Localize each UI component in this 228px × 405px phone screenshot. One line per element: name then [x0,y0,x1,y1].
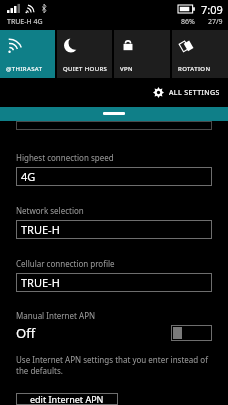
button[interactable]: ALL SETTINGS [153,87,220,98]
button[interactable]: 4G [16,167,212,186]
button[interactable]: edit Internet APN [16,393,118,405]
staticText: TRUE-H 4G [7,17,43,27]
button[interactable]: TRUE-H [16,220,212,239]
staticText: Highest connection speed [16,152,114,163]
staticText: @THIRASAT [6,65,43,73]
staticText: Cellular connection profile [16,258,115,269]
button[interactable]: @THIRASAT [0,30,55,78]
staticText: 86% [181,17,195,27]
staticText: Network selection [16,205,84,216]
staticText: edit Internet APN [30,393,104,405]
staticText: Off [16,324,36,342]
staticText: ALL SETTINGS [169,88,220,98]
staticText: Manual Internet APN [16,310,96,321]
staticText: TRUE-H [21,222,60,237]
staticText: ROTATION LOCK [178,65,228,73]
button[interactable]: TRUE-H [16,273,212,292]
staticText: 27/9 [208,17,223,27]
button[interactable]: Off [0,322,228,343]
button[interactable]: VPN [114,30,170,78]
staticText: 4G [21,169,36,184]
staticText: QUIET HOURS [63,65,108,73]
button[interactable]: ROTATION LOCK [172,30,228,78]
button[interactable] [16,121,212,130]
button[interactable]: Close action center [0,107,228,121]
staticText: TRUE-H [21,275,60,290]
staticText: Use Internet APN settings that you enter… [16,354,210,376]
button[interactable]: QUIET HOURS [57,30,112,78]
staticText: VPN [120,65,133,73]
staticText: 7:09 [201,2,223,17]
